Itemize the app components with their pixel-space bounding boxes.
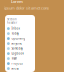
button[interactable]: Anytime	[5, 41, 35, 46]
staticText: Lorem	[11, 0, 23, 4]
button[interactable]: Today	[5, 31, 35, 36]
button[interactable]: Someday	[5, 46, 35, 51]
staticText: Someday	[11, 47, 22, 50]
button[interactable]: Logbook	[5, 51, 35, 56]
staticText: Trash	[11, 57, 17, 60]
button[interactable]: Areas	[5, 66, 35, 71]
staticText: Areas	[11, 67, 18, 70]
button[interactable]: Trash	[5, 56, 35, 61]
staticText: ipsum dolor sit amet cons	[4, 5, 49, 10]
staticText: Logbook	[11, 52, 23, 55]
button[interactable]: Inbox	[5, 26, 35, 31]
button[interactable]: Upcoming	[5, 36, 35, 41]
staticText: Inbox	[11, 27, 19, 30]
staticText: Anytime	[11, 42, 22, 45]
staticText: Section header	[7, 17, 17, 25]
staticText: Upcoming	[11, 37, 25, 40]
staticText: Today	[11, 32, 18, 35]
staticText: Projects	[11, 62, 22, 65]
button[interactable]: Projects	[5, 61, 35, 66]
